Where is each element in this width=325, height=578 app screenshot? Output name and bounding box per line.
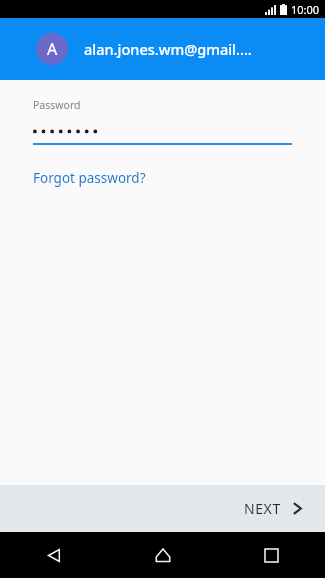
button[interactable] bbox=[33, 124, 292, 145]
staticText: alan.jones.wm@gmail.... bbox=[84, 39, 252, 59]
staticText: Password bbox=[33, 98, 81, 112]
button[interactable]: NEXT bbox=[222, 485, 325, 532]
staticText: NEXT bbox=[244, 499, 281, 518]
staticText: 10:00 bbox=[291, 2, 320, 17]
button[interactable]: Back bbox=[0, 532, 109, 578]
button[interactable]: Home bbox=[109, 532, 217, 578]
staticText: Forgot password? bbox=[33, 169, 146, 187]
button[interactable]: Forgot password? bbox=[33, 169, 146, 187]
staticText: A bbox=[47, 38, 58, 60]
button[interactable]: Recent apps bbox=[217, 532, 325, 578]
button[interactable]: A bbox=[0, 18, 325, 80]
